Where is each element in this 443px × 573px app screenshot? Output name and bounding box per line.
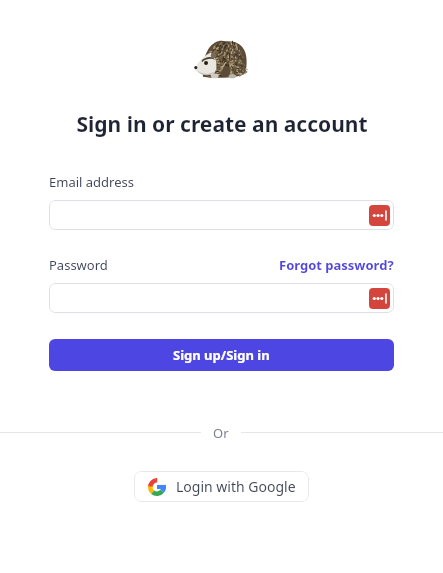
button[interactable]: Forgot password? — [279, 256, 394, 274]
button[interactable]: Login with Google — [134, 471, 309, 502]
button[interactable]: Fill password — [49, 200, 394, 230]
staticText: Sign in or create an account — [76, 110, 368, 139]
staticText: Password — [49, 256, 108, 274]
staticText: Or — [213, 424, 229, 440]
button[interactable]: Sign up/Sign in — [49, 339, 394, 371]
button[interactable]: Fill password — [369, 205, 390, 226]
button[interactable]: Fill password — [369, 288, 390, 309]
staticText: Sign up/Sign in — [173, 346, 270, 364]
staticText: Forgot password? — [279, 256, 394, 274]
button[interactable]: Fill password — [49, 283, 394, 313]
staticText: Login with Google — [176, 477, 296, 496]
staticText: Email address — [49, 173, 134, 191]
